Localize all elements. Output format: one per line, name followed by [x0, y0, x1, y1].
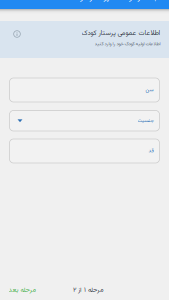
staticText: اطلاعات اولیه کودک خود را وارد کنید: [94, 40, 160, 48]
staticText: ثبت درخواست پرستار کودک: [68, 0, 160, 4]
button[interactable]: مرحله بعد: [1, 282, 42, 298]
staticText: جنسیت: [137, 117, 153, 125]
button[interactable]: سن: [9, 78, 159, 102]
staticText: مرحله بعد: [8, 285, 36, 295]
staticText: اطلاعات عمومی پرستار کودک: [81, 28, 160, 39]
staticText: مرحله ۱ از ۲: [72, 285, 103, 295]
button[interactable]: جنسیت: [9, 110, 159, 131]
staticText: سن: [145, 86, 153, 94]
staticText: قد: [148, 147, 153, 155]
button[interactable]: قد: [9, 139, 159, 163]
